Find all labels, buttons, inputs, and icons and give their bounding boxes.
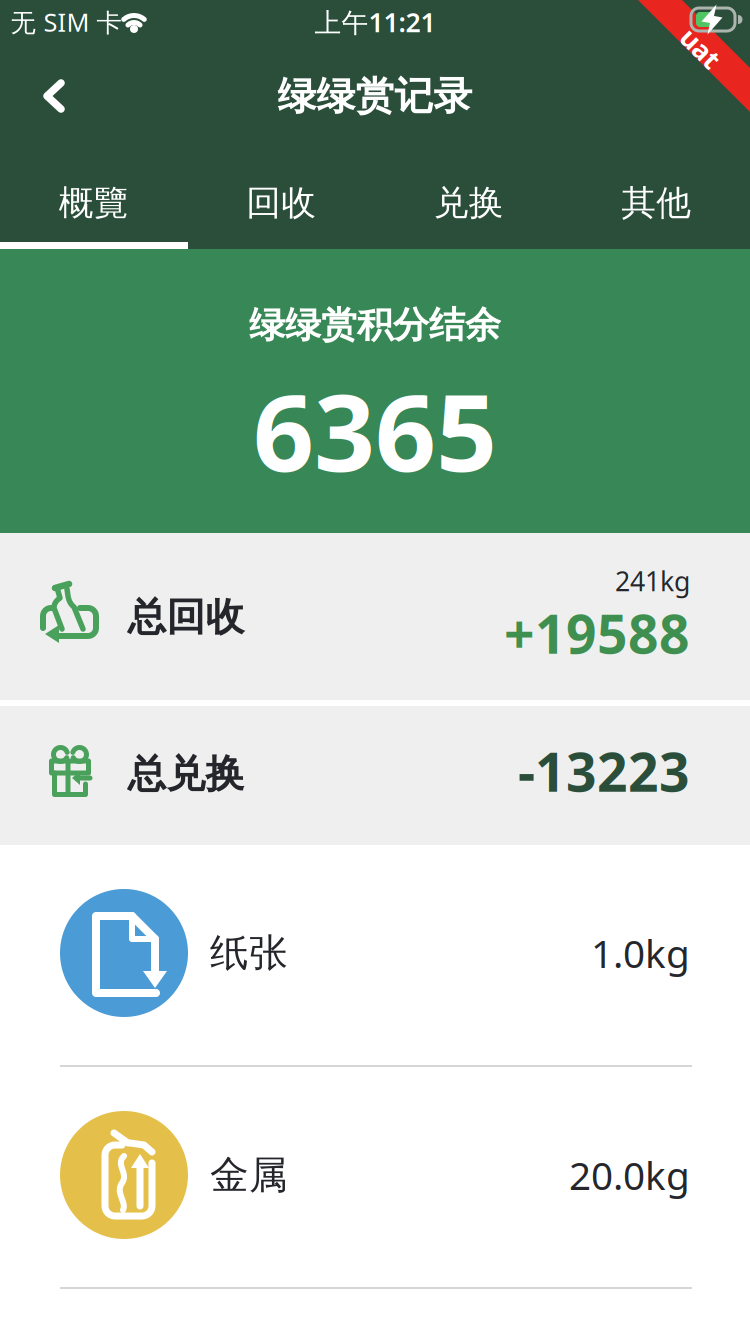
staticText: 无 SIM 卡 — [10, 5, 121, 39]
staticText: uat — [678, 30, 723, 66]
staticText: 上午11:21 — [314, 4, 435, 40]
button[interactable]: 概覽 — [0, 158, 187, 248]
button[interactable]: 兑换 — [375, 158, 562, 248]
staticText: -13223 — [518, 736, 690, 806]
button[interactable]: 总回收 — [0, 533, 750, 700]
staticText: 绿绿赏记录 — [277, 72, 472, 120]
staticText: 其他 — [621, 182, 691, 224]
staticText: 总兑换 — [127, 750, 244, 798]
staticText: +19588 — [504, 598, 690, 668]
staticText: 兑换 — [434, 182, 504, 224]
button[interactable]: 其他 — [562, 158, 750, 248]
staticText: 回收 — [246, 182, 316, 224]
staticText: 总回收 — [127, 593, 244, 641]
staticText: 1.0kg — [591, 927, 690, 979]
staticText: 6365 — [253, 359, 497, 501]
button[interactable]: 回收 — [187, 158, 375, 248]
staticText: 金属 — [210, 1151, 288, 1199]
staticText: 241kg — [615, 563, 690, 599]
staticText: 20.0kg — [569, 1149, 690, 1201]
button[interactable]: 金属 — [0, 1067, 750, 1287]
button[interactable]: 纸张 — [0, 845, 750, 1065]
staticText: 绿绿赏积分结余 — [249, 303, 501, 347]
staticText: 纸张 — [210, 929, 288, 977]
button[interactable] — [42, 80, 66, 112]
button[interactable]: 总兑换 — [0, 706, 750, 845]
staticText: 概覽 — [59, 182, 129, 224]
